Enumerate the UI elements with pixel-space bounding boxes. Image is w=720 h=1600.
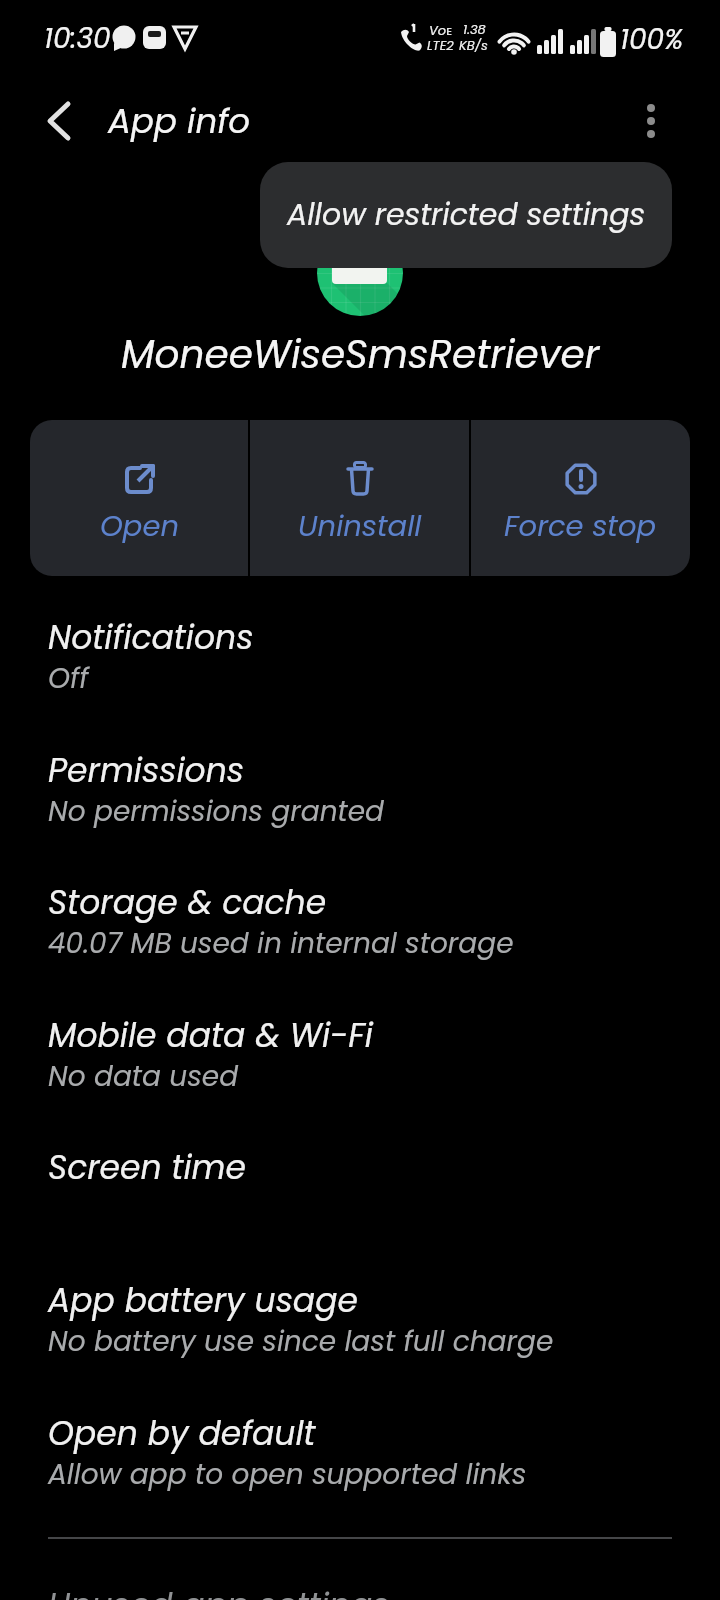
staticText: Allow restricted settings [287, 194, 646, 236]
staticText: 10:30 [44, 19, 111, 58]
staticText: Permissions [48, 747, 245, 793]
button[interactable]: Notifications [0, 599, 720, 717]
staticText: Screen time [48, 1144, 246, 1190]
staticText: App battery usage [48, 1277, 358, 1323]
staticText: Off [48, 659, 89, 698]
staticText: No permissions granted [48, 792, 385, 831]
staticText: App info [108, 97, 251, 145]
button[interactable]: Open by default [0, 1395, 720, 1513]
staticText: Open [100, 506, 179, 547]
button[interactable]: Permissions [0, 732, 720, 850]
staticText: Voᴇ [429, 21, 453, 39]
button[interactable]: Allow restricted settings [260, 162, 672, 268]
button[interactable] [28, 93, 84, 149]
button[interactable]: Mobile data & Wi-Fi [0, 997, 720, 1115]
staticText: KB/s [459, 36, 488, 54]
staticText: Unused app settings [48, 1582, 390, 1600]
staticText: Mobile data & Wi-Fi [48, 1012, 373, 1058]
staticText: Notifications [48, 614, 254, 660]
staticText: 40.07 MB used in internal storage [48, 924, 514, 963]
button[interactable]: Force stop [471, 420, 690, 576]
button[interactable]: Uninstall [250, 420, 469, 576]
button[interactable]: Storage & cache [0, 864, 720, 982]
staticText: MoneeWiseSmsRetriever [121, 327, 600, 382]
staticText: Force stop [504, 506, 657, 547]
staticText: No battery use since last full charge [48, 1322, 554, 1361]
staticText: LTE2 [427, 36, 454, 54]
staticText: 100% [620, 20, 684, 59]
button[interactable] [623, 93, 679, 149]
staticText: 1.38 [463, 20, 486, 38]
button[interactable]: Open [30, 420, 248, 576]
button[interactable]: Screen time [0, 1129, 720, 1247]
staticText: Uninstall [298, 506, 422, 547]
staticText: Open by default [48, 1410, 316, 1456]
button[interactable]: App battery usage [0, 1262, 720, 1380]
staticText: Allow app to open supported links [48, 1455, 527, 1494]
staticText: No data used [48, 1057, 239, 1096]
staticText: Storage & cache [48, 879, 327, 925]
